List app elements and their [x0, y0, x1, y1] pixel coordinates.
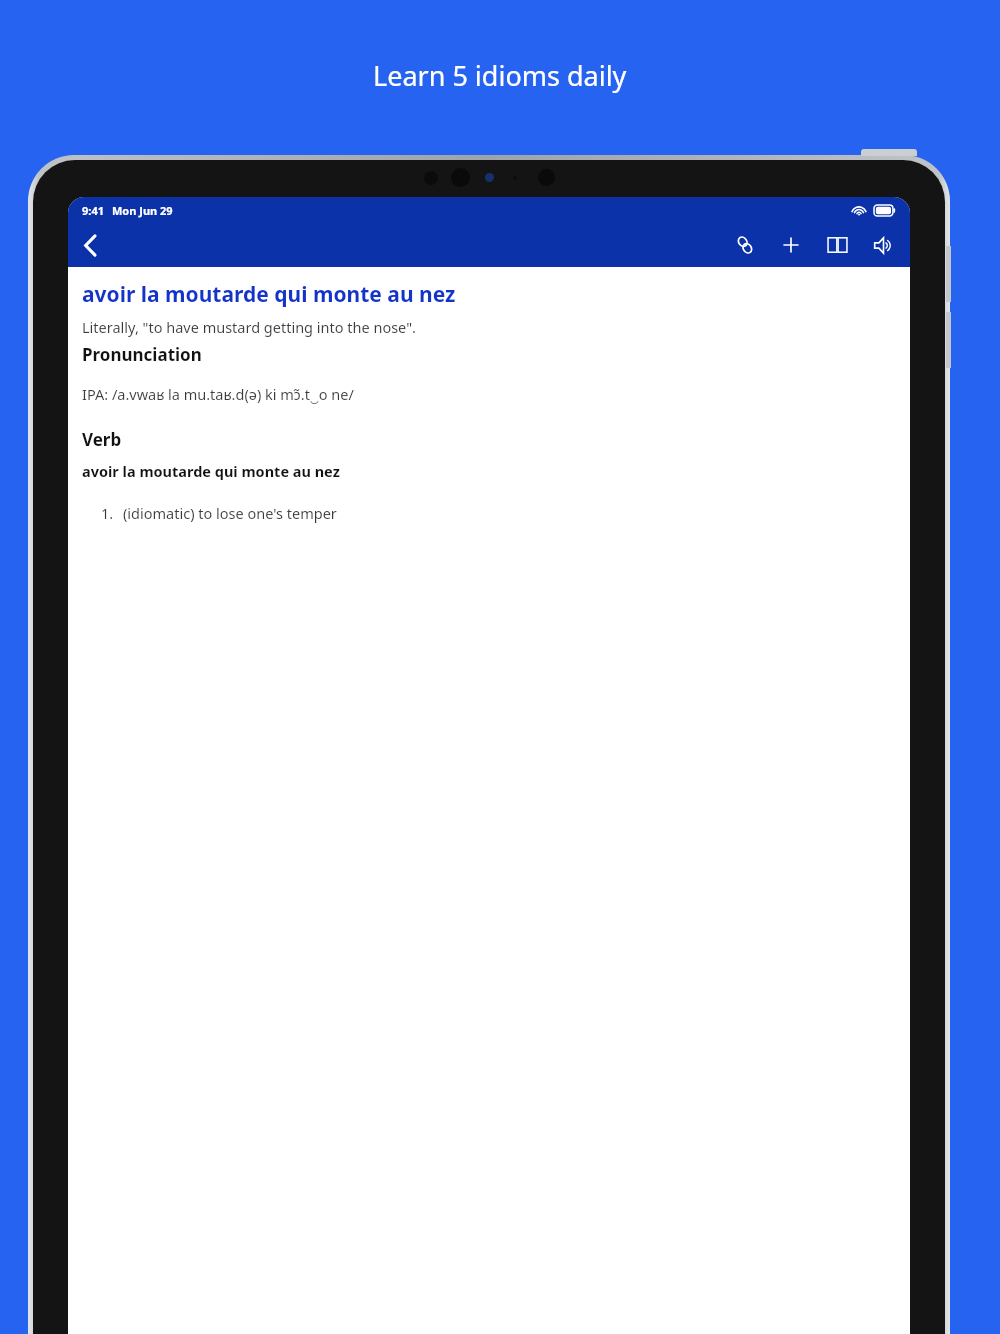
staticText: Pronunciation: [82, 343, 202, 366]
staticText: Learn 5 idioms daily: [373, 57, 627, 94]
button[interactable]: Back: [68, 223, 112, 267]
staticText: avoir la moutarde qui monte au nez: [82, 461, 340, 481]
button[interactable]: Pronounce: [860, 223, 906, 267]
staticText: Verb: [82, 428, 122, 451]
staticText: IPA: /a.vwaʁ la mu.taʁ.d(ə) ki mɔ̃.t‿o n…: [82, 384, 354, 404]
staticText: Mon Jun 29: [112, 203, 173, 218]
button[interactable]: Add: [768, 223, 814, 267]
staticText: avoir la moutarde qui monte au nez: [82, 280, 456, 309]
staticText: 9:41: [82, 203, 104, 218]
staticText: (idiomatic) to lose one's temper: [123, 503, 337, 523]
staticText: Literally, "to have mustard getting into…: [82, 317, 416, 337]
button[interactable]: Copy link: [722, 223, 768, 267]
staticText: 1.: [101, 503, 114, 523]
other: Power: [861, 149, 917, 156]
button[interactable]: Open book view: [814, 223, 860, 267]
